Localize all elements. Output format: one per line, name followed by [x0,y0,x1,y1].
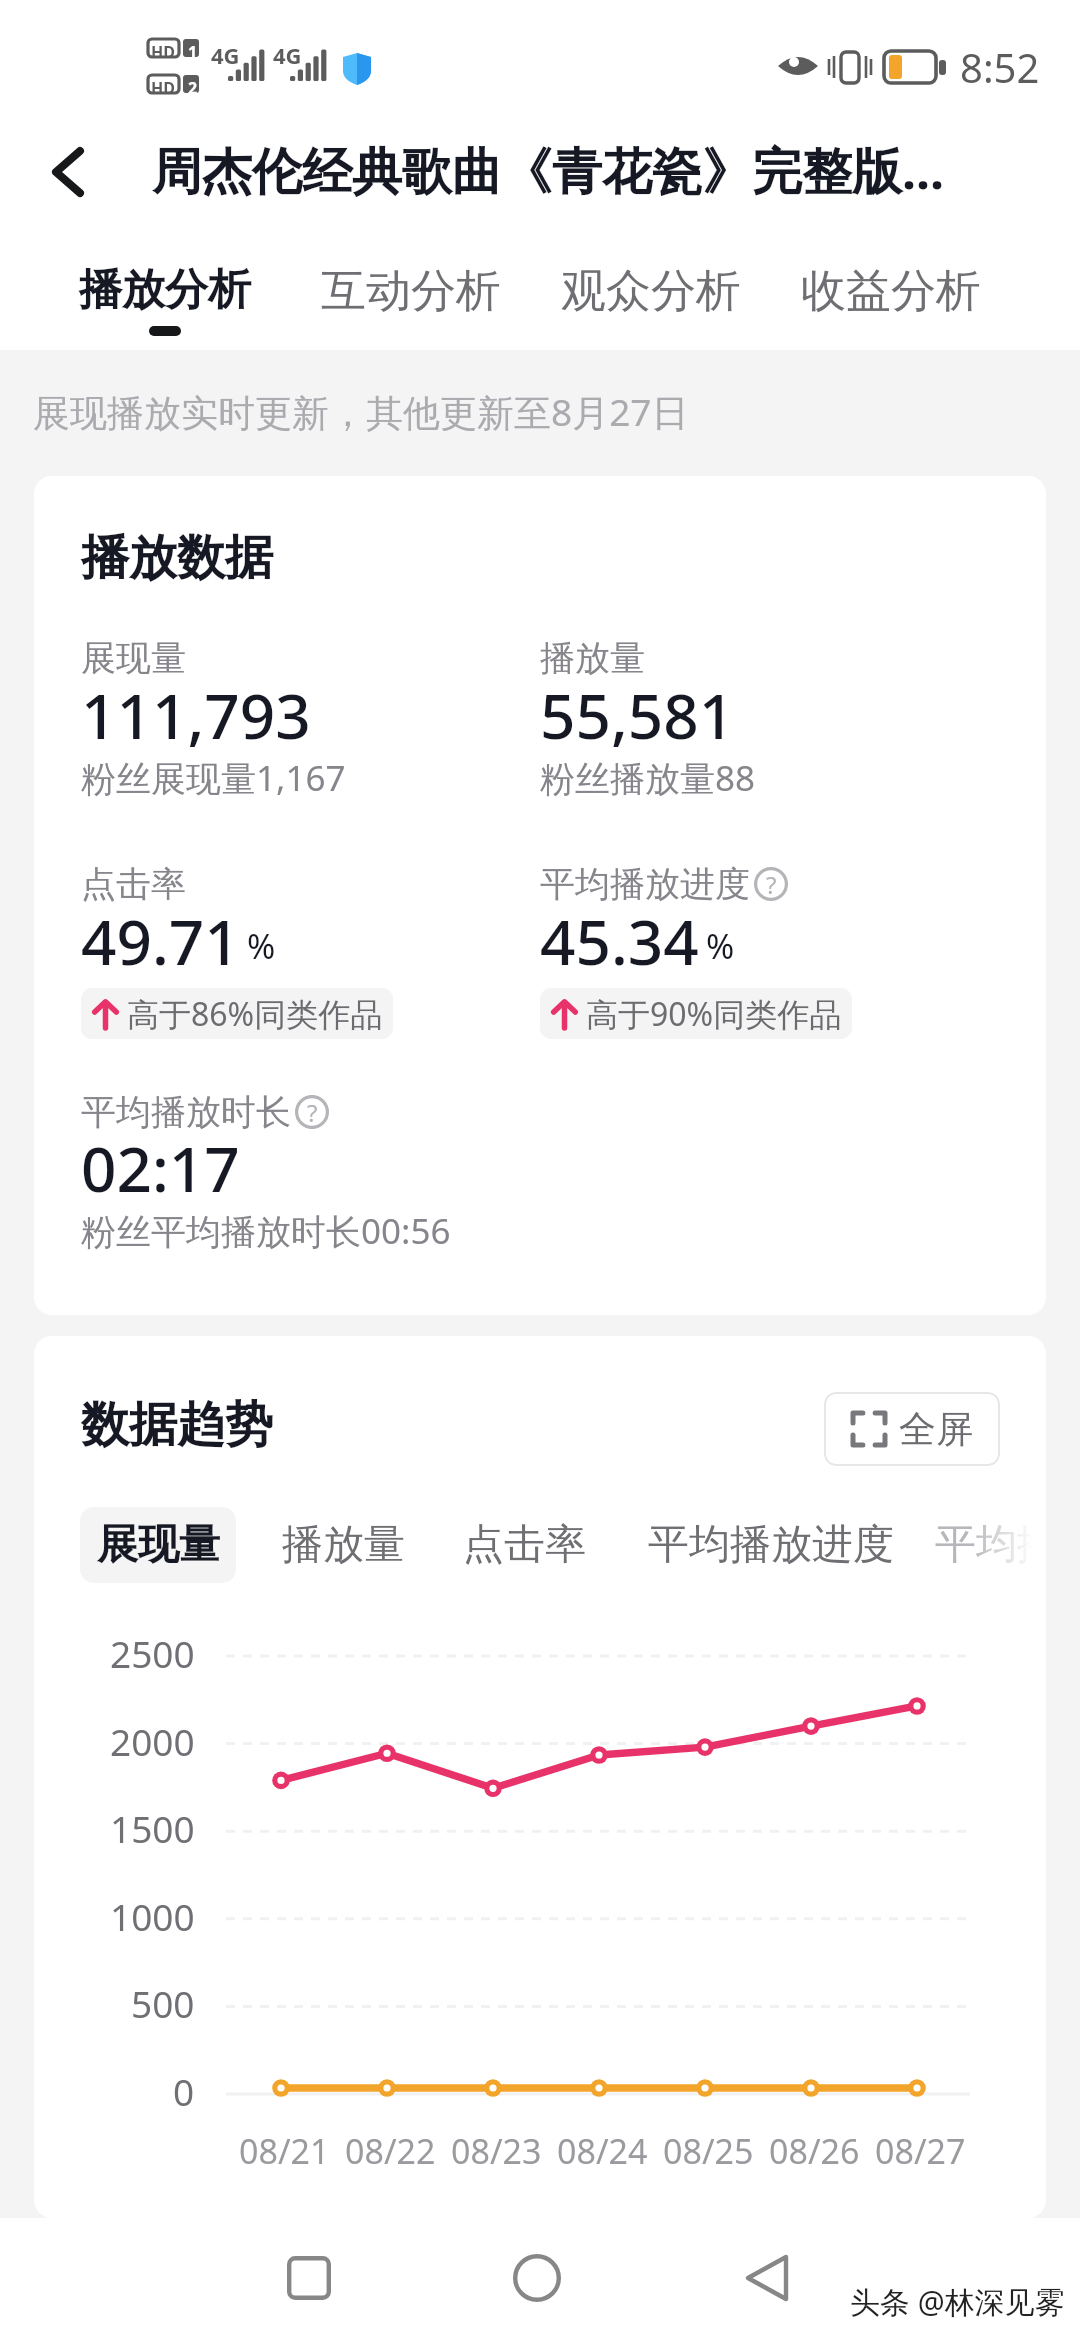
staticText: 粉丝播放量88 [540,754,756,802]
staticText: 08/25 [663,2128,754,2174]
staticText: 点击率 [81,862,186,906]
button[interactable]: 高于90%同类作品 [540,988,852,1039]
staticText: 08/27 [875,2128,966,2174]
staticText: 8:52 [960,40,1040,94]
staticText: 播放量 [540,636,645,680]
staticText: HD [151,77,175,99]
button[interactable]: 平均播放时长 [915,1507,1046,1583]
staticText: 1000 [110,1891,195,1941]
button[interactable]: Home [487,2228,587,2328]
button[interactable]: 平均播放进度 [628,1507,914,1583]
staticText: 收益分析 [801,263,981,320]
staticText: 49.71 [81,899,240,983]
staticText: 展现播放实时更新，其他更新至8月27日 [33,386,689,437]
staticText: 平均播放时长 [81,1090,291,1134]
staticText: 111,793 [81,673,311,757]
button[interactable]: Help [295,1095,329,1129]
staticText: HD [151,41,175,63]
staticText: 粉丝展现量1,167 [81,754,346,802]
staticText: 点击率 [463,1519,586,1571]
staticText: 播放数据 [81,528,273,588]
button[interactable]: 全屏 [824,1392,1000,1466]
staticText: 高于90%同类作品 [586,992,842,1036]
staticText: 08/22 [345,2128,436,2174]
staticText: 08/23 [451,2128,542,2174]
button[interactable]: Recents [259,2228,359,2328]
staticText: 平均播放进度 [540,862,750,906]
staticText: 互动分析 [321,263,501,320]
button[interactable]: Back [717,2228,817,2328]
staticText: ? [307,1096,318,1129]
staticText: 全屏 [899,1406,973,1453]
staticText: 500 [131,1978,195,2028]
staticText: 2000 [110,1716,195,1766]
staticText: 播放分析 [79,263,251,317]
staticText: 1500 [110,1803,195,1853]
staticText: 周杰伦经典歌曲《青花瓷》完整版... [152,136,945,204]
staticText: 4G [211,40,240,70]
button[interactable]: Back [13,117,123,227]
staticText: % [706,923,735,969]
staticText: 08/24 [557,2128,648,2174]
staticText: 展现量 [81,636,186,680]
staticText: 45.34 [540,899,699,983]
staticText: 1 [188,41,198,63]
staticText: 平均播放进度 [648,1519,894,1571]
staticText: 2 [188,77,198,99]
button[interactable]: 高于86%同类作品 [81,988,393,1039]
staticText: 播放量 [282,1519,405,1571]
staticText: 08/21 [239,2128,330,2174]
button[interactable]: 展现量 [80,1507,236,1583]
staticText: 粉丝平均播放时长00:56 [81,1207,451,1255]
staticText: 2500 [110,1628,195,1678]
button[interactable]: 点击率 [443,1507,606,1583]
button[interactable]: 互动分析 [303,263,519,371]
staticText: % [247,923,276,969]
staticText: 观众分析 [561,263,741,320]
staticText: 高于86%同类作品 [127,992,383,1036]
staticText: ? [766,868,777,901]
button[interactable]: 观众分析 [543,263,759,371]
button[interactable]: 播放分析 [61,263,269,371]
button[interactable]: 收益分析 [783,263,999,371]
staticText: 平均播放时长 [935,1519,1046,1571]
staticText: 数据趋势 [81,1395,273,1455]
staticText: 4G [273,40,302,70]
button[interactable]: 播放量 [262,1507,425,1583]
staticText: 头条 @林深见雾 [850,2281,1065,2322]
staticText: 02:17 [81,1126,240,1210]
staticText: 08/26 [769,2128,860,2174]
staticText: 55,581 [540,673,735,757]
staticText: 展现量 [97,1519,220,1571]
button[interactable]: Help [754,867,788,901]
staticText: 0 [173,2066,195,2116]
